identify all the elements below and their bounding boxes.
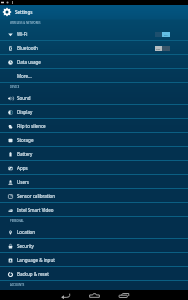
staticText: Sensor calibration bbox=[17, 193, 56, 199]
button[interactable]: Sound bbox=[0, 91, 188, 105]
button[interactable]: Bluetooth bbox=[0, 41, 188, 55]
button[interactable]: Sensor calibration bbox=[0, 189, 188, 203]
staticText: OFF bbox=[156, 47, 161, 50]
staticText: ON bbox=[164, 33, 168, 36]
staticText: Sound bbox=[17, 95, 31, 101]
button[interactable]: Display bbox=[0, 105, 188, 119]
button[interactable]: OFF bbox=[155, 46, 170, 51]
button[interactable]: Users bbox=[0, 175, 188, 189]
staticText: WIRELESS & NETWORKS bbox=[10, 21, 41, 25]
button[interactable]: Data usage bbox=[0, 55, 188, 69]
staticText: Wi-Fi bbox=[17, 31, 28, 37]
button[interactable]: Back bbox=[55, 290, 75, 300]
staticText: Users bbox=[17, 179, 29, 185]
staticText: Backup & reset bbox=[17, 271, 49, 277]
button[interactable]: Location bbox=[0, 225, 188, 239]
button[interactable]: Home bbox=[84, 290, 104, 300]
staticText: Language & input bbox=[17, 257, 55, 263]
button[interactable]: Apps bbox=[0, 161, 188, 175]
button[interactable]: Storage bbox=[0, 133, 188, 147]
staticText: Settings bbox=[15, 9, 33, 15]
button[interactable]: Settings bbox=[0, 5, 188, 19]
button[interactable]: Intel Smart Video bbox=[0, 203, 188, 217]
staticText: Flip to silence bbox=[17, 123, 46, 129]
staticText: Security bbox=[17, 243, 34, 249]
staticText: Apps bbox=[17, 165, 28, 171]
staticText: More... bbox=[17, 73, 32, 79]
staticText: Location bbox=[17, 229, 36, 235]
button[interactable]: Battery bbox=[0, 147, 188, 161]
button[interactable]: Wi-Fi bbox=[0, 27, 188, 41]
button[interactable]: More... bbox=[0, 69, 188, 83]
button[interactable]: Language & input bbox=[0, 253, 188, 267]
staticText: Storage bbox=[17, 137, 34, 143]
button[interactable]: ON bbox=[155, 32, 170, 37]
button[interactable]: Backup & reset bbox=[0, 267, 188, 281]
button[interactable]: Recent apps bbox=[113, 290, 133, 300]
staticText: Display bbox=[17, 109, 33, 115]
button[interactable]: Flip to silence bbox=[0, 119, 188, 133]
staticText: Intel Smart Video bbox=[17, 207, 54, 213]
staticText: PERSONAL bbox=[10, 219, 24, 223]
staticText: Bluetooth bbox=[17, 45, 38, 51]
staticText: Battery bbox=[17, 151, 33, 157]
staticText: Data usage bbox=[17, 59, 41, 65]
staticText: ACCOUNTS bbox=[10, 283, 25, 287]
button[interactable]: Security bbox=[0, 239, 188, 253]
staticText: DEVICE bbox=[10, 85, 20, 89]
